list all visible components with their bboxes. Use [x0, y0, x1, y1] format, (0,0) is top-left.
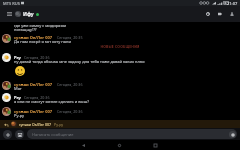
- button[interactable]: Home: [114, 140, 124, 150]
- button[interactable]: Reply: [2, 121, 9, 128]
- button[interactable]: Написать сообщение: [27, 129, 237, 139]
- staticText: Ру-ру: [14, 113, 25, 118]
- button[interactable]: Reply: [0, 120, 240, 128]
- button[interactable]: Avatar: [2, 53, 11, 62]
- button[interactable]: Recents: [150, 140, 160, 150]
- staticText: MTS RUS: [3, 1, 20, 6]
- staticText: Да нам посрё я кот хоту напи: [14, 39, 71, 44]
- staticText: Ифу: [23, 11, 34, 18]
- staticText: сугжаи Ок/Лег 007: [14, 35, 53, 40]
- button[interactable]: Chat avatar: [15, 11, 21, 17]
- button[interactable]: Avatar: [2, 81, 11, 90]
- button[interactable]: Members: [226, 8, 238, 20]
- button[interactable]: Avatar: [2, 34, 11, 43]
- button[interactable]: Avatar: [2, 107, 11, 116]
- button[interactable]: Pinned messages: [214, 8, 226, 20]
- button[interactable]: Back: [78, 140, 88, 150]
- staticText: Рэу: [14, 95, 21, 100]
- staticText: где уже симку с мидирями: [14, 23, 66, 28]
- staticText: НОВЫЕ СООБЩЕНИЯ: [0, 44, 240, 49]
- staticText: Сегодня, 20:36: [57, 109, 83, 114]
- button[interactable]: Avatar: [2, 93, 11, 102]
- button[interactable]: Camera: [15, 130, 24, 139]
- button[interactable]: Add attachment: [3, 130, 12, 139]
- staticText: 21:07: [227, 1, 238, 6]
- staticText: потащщу!??: [14, 27, 37, 32]
- staticText: сугжаи Ок/Лег 007: [14, 82, 53, 87]
- button[interactable]: Auto delete timer: [202, 8, 214, 20]
- staticText: Ру-ру: [54, 122, 64, 127]
- staticText: а они не смогут менее сделать и выш?: [14, 99, 89, 104]
- staticText: сугжаи Ок/Лег 007: [14, 109, 53, 114]
- staticText: Рэу: [14, 55, 21, 60]
- button[interactable]: Menu: [4, 9, 14, 19]
- staticText: Сегодня, 20:36: [24, 95, 50, 100]
- staticText: Написать сообщение: [32, 132, 74, 137]
- button[interactable]: Emoji: [229, 131, 236, 138]
- staticText: сугжаи Ок/Лег 007: [19, 122, 52, 127]
- staticText: Сегодня, 20:35: [57, 35, 83, 40]
- staticText: Мат: [14, 86, 22, 91]
- staticText: ну давай тогда обычка мне задачу для теб…: [14, 59, 145, 64]
- staticText: Сегодня, 20:36: [24, 55, 50, 60]
- staticText: Сегодня, 20:36: [57, 82, 83, 87]
